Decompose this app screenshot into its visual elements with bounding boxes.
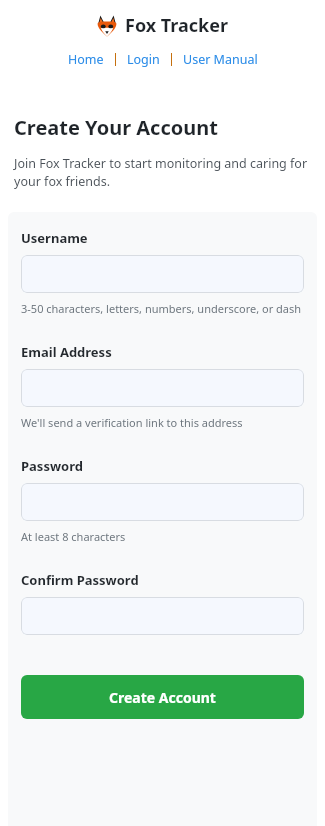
staticText: Email Address: [21, 343, 112, 361]
staticText: Create Account: [109, 688, 216, 707]
staticText: Fox Tracker: [125, 13, 229, 38]
button[interactable]: Home: [64, 49, 108, 70]
button[interactable]: Password: [21, 483, 304, 521]
button[interactable]: Username: [21, 255, 304, 293]
staticText: Home: [68, 51, 104, 68]
button[interactable]: Login: [123, 49, 164, 70]
staticText: Password: [21, 457, 83, 475]
staticText: 3-50 characters, letters, numbers, under…: [21, 301, 302, 316]
staticText: Create Your Account: [14, 114, 218, 141]
button[interactable]: Email Address: [21, 369, 304, 407]
button[interactable]: Confirm Password: [21, 597, 304, 635]
button[interactable]: Create Account: [21, 675, 304, 719]
staticText: Confirm Password: [21, 571, 139, 589]
staticText: At least 8 characters: [21, 529, 126, 544]
staticText: Username: [21, 229, 88, 247]
staticText: User Manual: [183, 51, 258, 68]
staticText: Login: [127, 51, 160, 68]
other: Fox Tracker logo: [96, 15, 118, 37]
button[interactable]: User Manual: [179, 49, 262, 70]
staticText: Join Fox Tracker to start monitoring and…: [14, 155, 308, 190]
staticText: We'll send a verification link to this a…: [21, 415, 243, 430]
